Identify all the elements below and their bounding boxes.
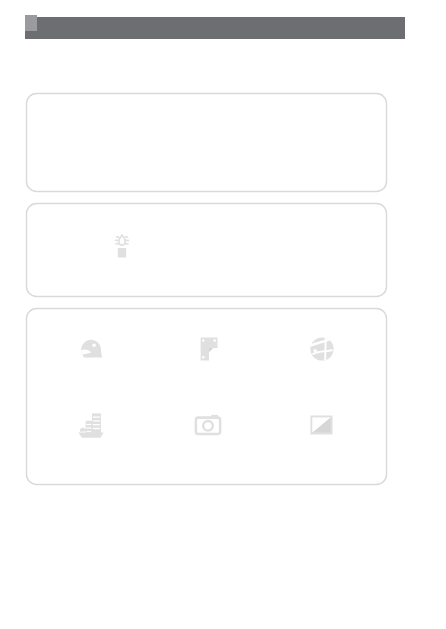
button[interactable]: Toolbar [25, 17, 405, 39]
button[interactable]: Buildings [73, 406, 111, 444]
button[interactable]: Candle panel [26, 203, 387, 297]
button[interactable]: Globe [303, 330, 341, 368]
button[interactable]: Contrast [303, 406, 341, 444]
button[interactable]: Flag marker [189, 330, 227, 368]
button[interactable]: Bird [73, 330, 111, 368]
button[interactable]: Camera [189, 406, 227, 444]
button[interactable]: Empty panel [26, 93, 387, 192]
button[interactable]: Tools panel [26, 308, 387, 485]
button[interactable]: Candle light [104, 228, 140, 264]
